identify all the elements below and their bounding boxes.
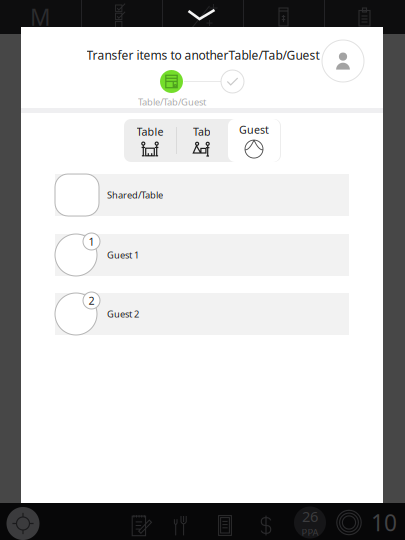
button[interactable]: Clean [162, 2, 243, 36]
button[interactable]: 26 PPA [288, 504, 332, 540]
button[interactable]: Notes [122, 507, 162, 540]
button[interactable]: Checks [324, 0, 405, 34]
button[interactable]: Tab [176, 119, 228, 162]
staticText: Table [136, 124, 163, 139]
button[interactable]: Orders [81, 4, 162, 38]
button[interactable]: Menu [161, 507, 201, 540]
staticText: Guest 1 [107, 249, 139, 261]
button[interactable]: Table [124, 119, 176, 162]
staticText: 10 [371, 507, 397, 537]
staticText: Table/Tab/Guest [138, 96, 206, 108]
staticText: 1 [88, 234, 94, 249]
button[interactable]: Timer [331, 504, 367, 540]
button[interactable]: Shared/Table [55, 174, 349, 216]
staticText: PPA [301, 526, 318, 538]
button[interactable]: Payments [243, 0, 324, 34]
staticText: Guest 2 [107, 308, 139, 320]
staticText: Shared/Table [107, 189, 163, 201]
button[interactable]: M [0, 0, 81, 34]
staticText: 26 [302, 507, 318, 526]
staticText: M [30, 2, 51, 32]
staticText: Tab [193, 124, 211, 139]
staticText: 2 [88, 293, 94, 308]
button[interactable]: Bill [205, 507, 245, 540]
button[interactable]: Account [322, 40, 364, 82]
staticText: Guest [239, 122, 269, 137]
staticText: Transfer items to anotherTable/Tab/Guest [86, 47, 319, 63]
button[interactable]: Locate [0, 505, 46, 540]
button[interactable]: Guest 2 [55, 293, 349, 335]
button[interactable]: Payments [246, 507, 286, 540]
button[interactable]: Guest [228, 119, 280, 162]
button[interactable]: Guest 1 [55, 234, 349, 276]
